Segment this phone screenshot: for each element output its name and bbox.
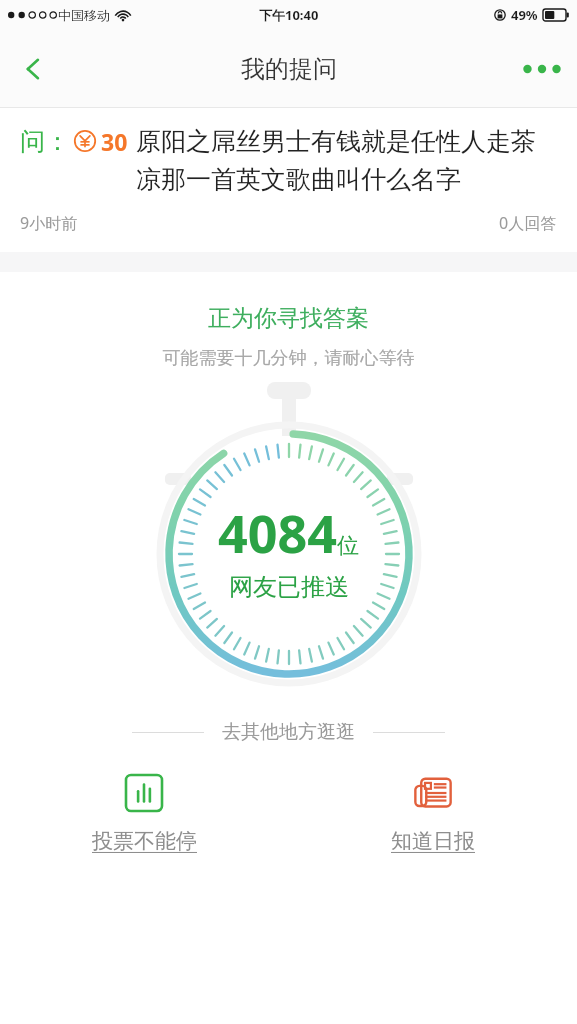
staticText: 问：	[20, 126, 70, 157]
staticText: 去其他地方逛逛	[222, 720, 355, 744]
button[interactable]: More options	[507, 39, 577, 99]
staticText: 我的提问	[241, 54, 337, 84]
staticText: 原阳之屌丝男士有钱就是任性人走茶凉那一首英文歌曲叫什么名字	[136, 126, 557, 196]
staticText: 30	[101, 126, 128, 157]
button[interactable]: 投票不能停	[0, 772, 288, 854]
staticText: 4084位	[218, 497, 359, 568]
staticText: 正为你寻找答案	[0, 304, 577, 333]
staticText: 网友已推送	[229, 572, 349, 602]
staticText: 可能需要十几分钟，请耐心等待	[0, 347, 577, 370]
staticText: 9小时前	[20, 212, 78, 234]
staticText: 0人回答	[499, 212, 557, 234]
staticText: 49%	[511, 6, 538, 24]
staticText: 中国移动	[58, 7, 110, 23]
staticText: 投票不能停	[92, 828, 197, 854]
button[interactable]: 知道日报	[288, 772, 577, 854]
button[interactable]: Back	[0, 35, 68, 103]
staticText: 下午10:40	[259, 6, 319, 24]
staticText: 知道日报	[391, 828, 475, 854]
